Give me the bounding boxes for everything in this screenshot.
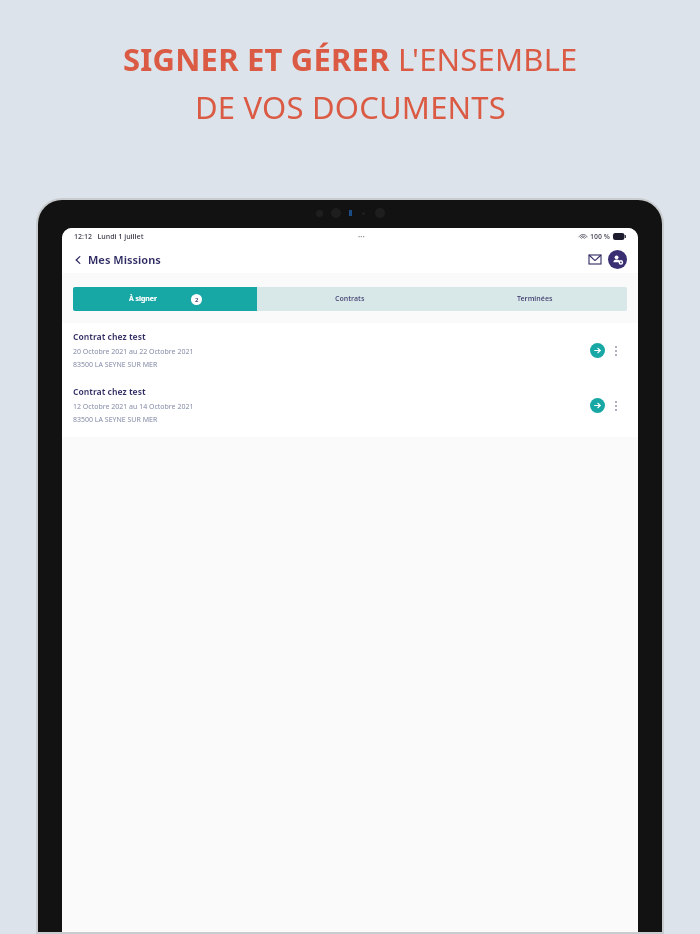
- staticText: À signer: [129, 294, 157, 304]
- button[interactable]: Account settings: [608, 250, 627, 269]
- staticText: 12 Octobre 2021 au 14 Octobre 2021: [73, 402, 194, 412]
- staticText: Contrats: [335, 294, 365, 304]
- staticText: 100 %: [590, 232, 610, 242]
- button[interactable]: Sign contract: [590, 398, 605, 413]
- button[interactable]: More options: [605, 396, 627, 416]
- staticText: 83500 LA SEYNE SUR MER: [73, 360, 158, 370]
- button[interactable]: Back: [73, 252, 165, 267]
- button[interactable]: More options: [605, 341, 627, 361]
- button[interactable]: Contrats: [257, 287, 442, 311]
- staticText: DE VOS DOCUMENTS: [195, 86, 506, 128]
- button[interactable]: Contrat chez test: [62, 378, 638, 433]
- staticText: 12:12 Lundi 1 juillet: [74, 232, 144, 242]
- staticText: L'ENSEMBLE: [398, 38, 578, 80]
- staticText: Contrat chez test: [73, 386, 146, 398]
- button[interactable]: Messages: [585, 249, 605, 269]
- staticText: Terminées: [517, 294, 553, 304]
- staticText: 83500 LA SEYNE SUR MER: [73, 415, 158, 425]
- staticText: 20 Octobre 2021 au 22 Octobre 2021: [73, 347, 194, 357]
- staticText: 2: [195, 296, 199, 304]
- button[interactable]: Sign contract: [590, 343, 605, 358]
- staticText: Mes Missions: [88, 252, 161, 267]
- button[interactable]: À signer: [73, 287, 257, 311]
- staticText: •••: [358, 233, 365, 241]
- other: Back: [73, 255, 83, 265]
- staticText: SIGNER ET GÉRER: [123, 38, 398, 80]
- button[interactable]: Terminées: [442, 287, 627, 311]
- button[interactable]: Contrat chez test: [62, 323, 638, 378]
- staticText: Contrat chez test: [73, 331, 146, 343]
